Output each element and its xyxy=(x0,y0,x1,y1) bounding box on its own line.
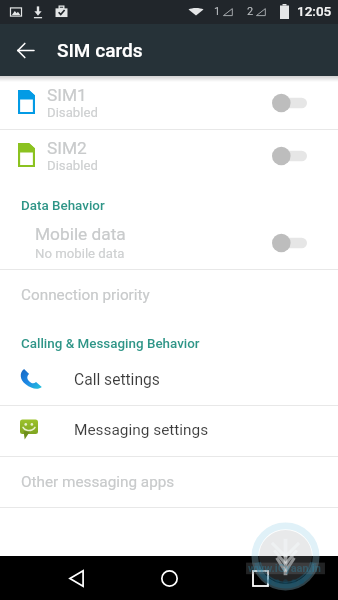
button[interactable]: Navigate up xyxy=(10,35,40,65)
staticText: Other messaging apps xyxy=(21,473,175,491)
staticText: Calling & Messaging Behavior xyxy=(21,336,200,352)
staticText: Messaging settings xyxy=(74,421,209,439)
button[interactable]: Toggle xyxy=(272,233,307,253)
staticText: www.iGyaan.in xyxy=(248,562,321,575)
button[interactable] xyxy=(0,456,338,507)
staticText: 12:05 xyxy=(297,3,332,19)
staticText: Call settings xyxy=(74,371,160,389)
button[interactable] xyxy=(0,405,338,456)
button[interactable] xyxy=(0,82,338,129)
button[interactable]: Home xyxy=(147,556,191,600)
button[interactable] xyxy=(0,269,338,316)
button[interactable]: Toggle xyxy=(272,146,307,166)
staticText: 1 xyxy=(214,5,221,18)
staticText: SIM2 xyxy=(47,138,87,158)
button[interactable] xyxy=(0,356,338,405)
staticText: Connection priority xyxy=(21,286,150,304)
button[interactable]: Toggle xyxy=(272,93,307,113)
staticText: SIM1 xyxy=(47,85,87,105)
button[interactable]: Recent apps xyxy=(238,556,282,600)
staticText: Data Behavior xyxy=(21,198,105,214)
staticText: No mobile data xyxy=(35,246,125,261)
staticText: SIM cards xyxy=(57,39,143,61)
staticText: 2 xyxy=(247,5,254,18)
button[interactable]: Back xyxy=(54,556,98,600)
button[interactable] xyxy=(0,222,338,269)
staticText: Disabled xyxy=(47,105,98,120)
staticText: Mobile data xyxy=(35,224,126,244)
staticText: Disabled xyxy=(47,158,98,173)
button[interactable] xyxy=(0,129,338,176)
